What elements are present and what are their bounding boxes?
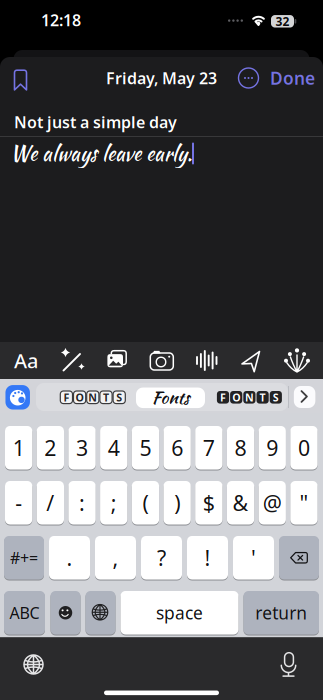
staticText: ) (174, 489, 180, 517)
staticText: S (116, 390, 122, 404)
staticText: F (63, 390, 69, 404)
staticText: 5 (139, 434, 151, 462)
staticText: ( (142, 489, 148, 517)
button[interactable]: ? (141, 535, 182, 580)
button[interactable]: Next keyboard (85, 590, 115, 635)
button[interactable]: Switch keyboard (17, 648, 51, 682)
staticText: We always leave early. (10, 138, 192, 168)
staticText: & (233, 489, 249, 517)
button[interactable]: Boxed filled font (216, 390, 283, 404)
button[interactable]: 3 (68, 425, 96, 470)
staticText: N (245, 390, 254, 404)
staticText: 4 (108, 434, 120, 462)
button[interactable]: Dictation (272, 647, 306, 681)
staticText: Aa (14, 347, 38, 374)
button[interactable]: ! (187, 535, 228, 580)
staticText: O (232, 390, 240, 404)
staticText: 32 (275, 13, 289, 29)
staticText: 0 (298, 434, 310, 462)
button[interactable]: Photos (101, 345, 133, 375)
button[interactable]: ; (100, 480, 127, 525)
button[interactable]: Boxed outline font (59, 390, 126, 404)
button[interactable]: , (95, 535, 136, 580)
staticText: ! (204, 544, 210, 572)
staticText: " (299, 489, 308, 517)
button[interactable]: 8 (227, 425, 254, 470)
staticText: Done (270, 66, 315, 89)
button[interactable]: Theme color (5, 384, 31, 410)
staticText: Fonts (151, 385, 189, 410)
button[interactable]: @ (259, 480, 286, 525)
staticText: Not just a simple day (14, 111, 177, 133)
staticText: N (88, 390, 97, 404)
staticText: S (273, 390, 279, 404)
button[interactable]: Script font (136, 385, 205, 410)
staticText: 2 (44, 434, 56, 462)
button[interactable]: Delete (279, 535, 319, 580)
button[interactable]: 7 (195, 425, 222, 470)
staticText: , (112, 544, 118, 572)
button[interactable]: return (243, 590, 319, 635)
button[interactable]: 1 (5, 425, 32, 470)
button[interactable]: ABC (4, 590, 45, 635)
button[interactable]: Audio recording (191, 345, 223, 375)
staticText: O (76, 390, 84, 404)
button[interactable]: Camera (146, 345, 178, 375)
button[interactable]: Done (270, 66, 315, 89)
button[interactable]: 5 (132, 425, 159, 470)
button[interactable]: #+= (4, 535, 44, 580)
button[interactable]: : (68, 480, 96, 525)
staticText: return (255, 601, 307, 624)
button[interactable]: space (120, 590, 238, 635)
staticText: - (15, 489, 22, 517)
button[interactable]: . (49, 535, 90, 580)
button[interactable]: 9 (259, 425, 286, 470)
button[interactable]: 2 (37, 425, 64, 470)
button[interactable]: More fonts (293, 385, 317, 409)
staticText: ? (157, 544, 166, 572)
staticText: / (46, 489, 54, 517)
staticText: . (66, 544, 72, 572)
button[interactable]: Friday, May 23 (106, 67, 217, 89)
button[interactable]: Journaling suggestions (281, 345, 313, 375)
staticText: ABC (9, 602, 39, 623)
button[interactable]: ( (132, 480, 159, 525)
button[interactable]: $ (195, 480, 222, 525)
staticText: T (103, 390, 109, 404)
staticText: 6 (171, 434, 183, 462)
staticText: ' (251, 544, 256, 572)
button[interactable]: " (290, 480, 318, 525)
button[interactable]: - (5, 480, 32, 525)
staticText: space (156, 601, 203, 624)
button[interactable]: Text format (9, 345, 43, 375)
button[interactable]: / (37, 480, 64, 525)
staticText: 12:18 (41, 9, 81, 31)
button[interactable]: More options (235, 65, 261, 91)
staticText: 9 (266, 434, 278, 462)
staticText: 7 (203, 434, 215, 462)
button[interactable]: 6 (163, 425, 191, 470)
button[interactable]: 0 (290, 425, 318, 470)
staticText: ; (111, 489, 117, 517)
staticText: 1 (13, 434, 25, 462)
button[interactable]: & (227, 480, 254, 525)
button[interactable]: ) (163, 480, 191, 525)
staticText: F (220, 390, 226, 404)
staticText: T (260, 390, 266, 404)
staticText: 8 (235, 434, 247, 462)
staticText: $ (203, 489, 215, 517)
staticText: : (79, 489, 85, 517)
staticText: #+= (10, 547, 38, 568)
staticText: Friday, May 23 (106, 67, 217, 89)
staticText: 3 (76, 434, 88, 462)
button[interactable]: 4 (100, 425, 127, 470)
button[interactable]: Emoji (50, 590, 80, 635)
button[interactable]: ' (233, 535, 274, 580)
button[interactable]: Location (236, 345, 268, 375)
button[interactable]: Bookmark (8, 68, 32, 92)
staticText: @ (263, 489, 282, 517)
button[interactable]: Writing tools (56, 345, 88, 375)
